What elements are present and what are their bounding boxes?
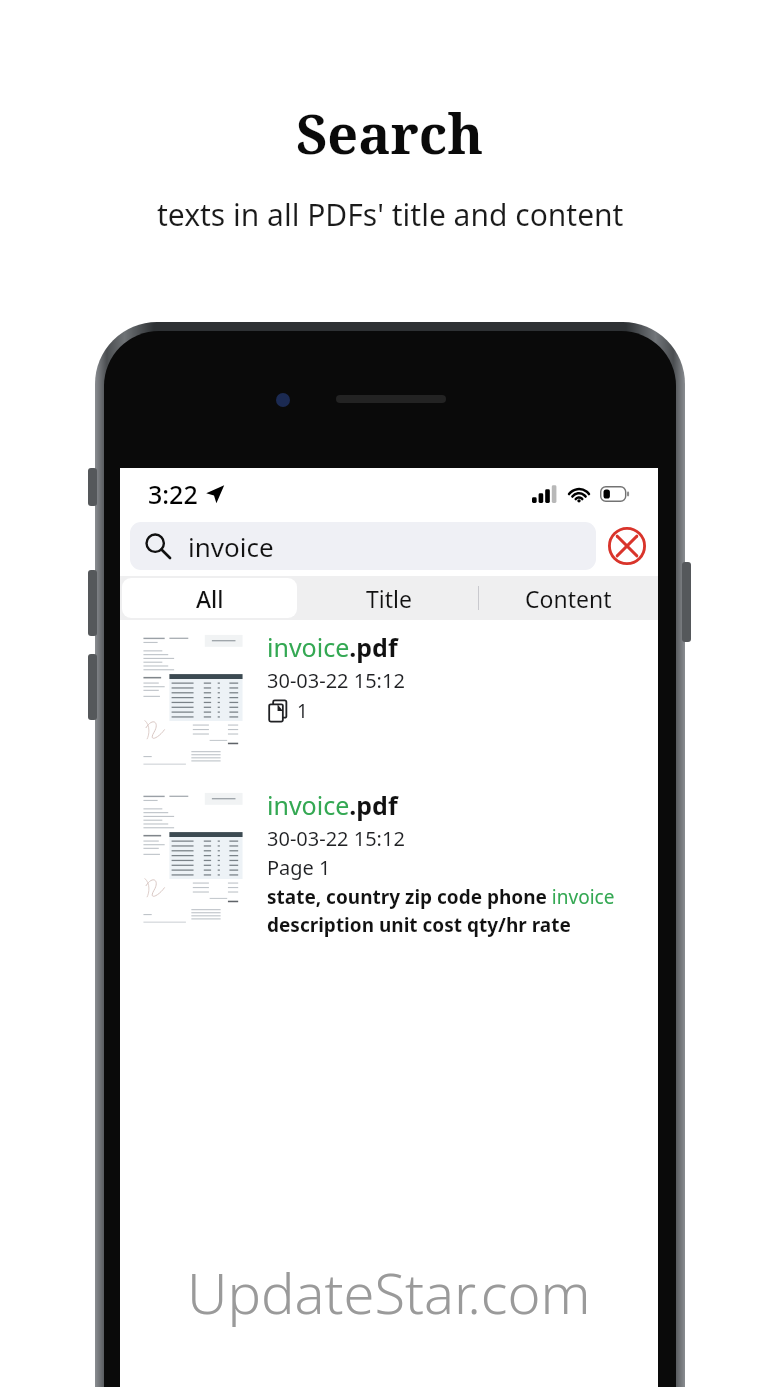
staticText: 3:22 — [148, 477, 198, 511]
staticText: All — [196, 583, 224, 614]
button[interactable]: All — [122, 578, 297, 618]
button[interactable]: invoice — [130, 522, 596, 570]
staticText: description unit cost qty/hr rate amount… — [267, 912, 646, 938]
staticText: 30-03-22 15:12 — [267, 825, 405, 852]
staticText: invoice.pdf — [267, 630, 398, 664]
staticText: Page 1 — [267, 854, 331, 881]
staticText: Search — [296, 96, 484, 170]
button[interactable]: Clear search — [604, 523, 650, 569]
staticText: invoice.pdf — [267, 788, 398, 822]
button[interactable]: Title — [299, 576, 478, 620]
staticText: Title — [366, 583, 412, 614]
staticText: invoice — [188, 529, 274, 564]
button[interactable]: invoice.pdf — [120, 620, 658, 778]
staticText: UpdateStar.com — [187, 1254, 591, 1330]
staticText: 30-03-22 15:12 — [267, 667, 405, 694]
staticText: Content — [525, 583, 612, 614]
button[interactable]: Content — [479, 576, 658, 620]
staticText: texts in all PDFs' title and content — [157, 194, 624, 235]
staticText: state, country zip code phone invoice — [267, 884, 615, 910]
button[interactable]: invoice.pdf — [120, 778, 658, 946]
staticText: 1 — [297, 698, 308, 724]
